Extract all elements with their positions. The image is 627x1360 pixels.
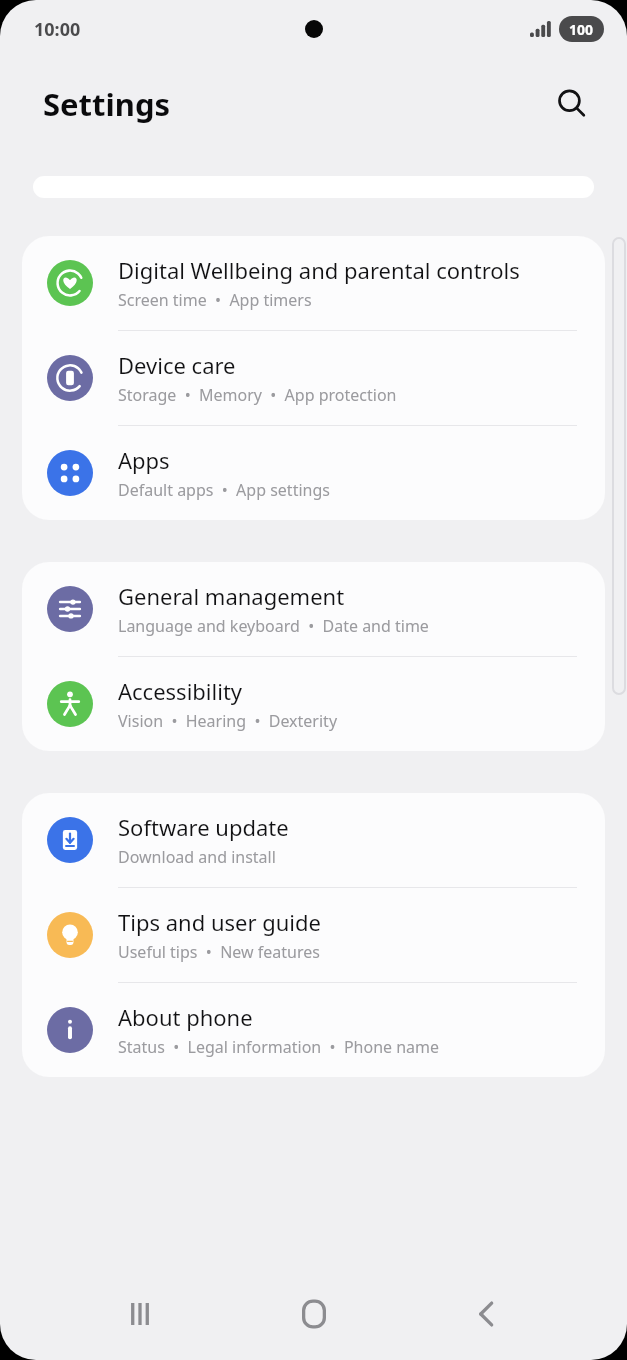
button[interactable]: About phone [22, 983, 605, 1077]
button[interactable]: Software update [22, 793, 605, 887]
staticText: Vision • Hearing • Dexterity [118, 710, 338, 732]
staticText: 100 [569, 20, 594, 39]
button[interactable]: Apps [22, 426, 605, 520]
button[interactable]: Search [547, 79, 597, 129]
staticText: Screen time • App timers [118, 289, 312, 311]
staticText: General management [118, 581, 345, 611]
staticText: Tips and user guide [118, 907, 321, 937]
staticText: Accessibility [118, 676, 243, 706]
staticText: Status • Legal information • Phone name [118, 1036, 440, 1058]
staticText: Digital Wellbeing and parental controls [118, 255, 520, 285]
staticText: Default apps • App settings [118, 479, 330, 501]
button[interactable]: Digital Wellbeing and parental controls [22, 236, 605, 330]
button[interactable]: Tips and user guide [22, 888, 605, 982]
staticText: Device care [118, 350, 236, 380]
staticText: Software update [118, 812, 289, 842]
staticText: Download and install [118, 846, 276, 868]
button[interactable]: General management [22, 562, 605, 656]
staticText: Apps [118, 445, 170, 475]
staticText: Language and keyboard • Date and time [118, 615, 429, 637]
staticText: 10:00 [34, 17, 81, 42]
button[interactable]: Home [281, 1281, 347, 1347]
staticText: Storage • Memory • App protection [118, 384, 397, 406]
staticText: Useful tips • New features [118, 941, 320, 963]
button[interactable]: Recent apps [107, 1281, 173, 1347]
button[interactable]: Back [454, 1281, 520, 1347]
staticText: About phone [118, 1002, 253, 1032]
button[interactable]: Accessibility [22, 657, 605, 751]
button[interactable]: Device care [22, 331, 605, 425]
staticText: Settings [43, 83, 171, 125]
